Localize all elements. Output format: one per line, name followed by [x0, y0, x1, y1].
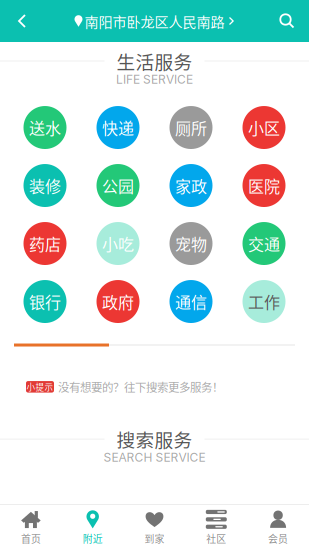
staticText: 医院	[248, 174, 280, 197]
staticText: 快递	[102, 116, 134, 139]
staticText: 厕所	[175, 116, 207, 139]
button[interactable]: 医院	[227, 156, 300, 214]
button[interactable]: 快递	[81, 98, 154, 156]
button[interactable]: Back	[0, 0, 44, 42]
staticText: 会员	[268, 531, 288, 546]
staticText: 搜索服务	[116, 426, 192, 453]
staticText: 公园	[102, 174, 134, 197]
button[interactable]: 银行	[8, 272, 81, 330]
button[interactable]: 会员	[247, 505, 309, 550]
button[interactable]: Search	[265, 0, 309, 42]
button[interactable]: 小区	[227, 98, 300, 156]
staticText: 装修	[29, 174, 61, 197]
button[interactable]: 首页	[0, 505, 62, 550]
button[interactable]: 药店	[8, 214, 81, 272]
button[interactable]: 工作	[227, 272, 300, 330]
button[interactable]: 南阳市卧龙区人民南路	[74, 11, 234, 31]
staticText: SEARCH SERVICE	[103, 450, 205, 465]
button[interactable]: 交通	[227, 214, 300, 272]
staticText: 到家	[144, 531, 164, 546]
staticText: 南阳市卧龙区人民南路	[84, 11, 224, 31]
button[interactable]: 到家	[124, 505, 185, 550]
staticText: 家政	[175, 174, 207, 197]
staticText: 送水	[29, 116, 61, 139]
staticText: 药店	[29, 232, 61, 255]
staticText: 宠物	[175, 232, 207, 255]
button[interactable]: 家政	[154, 156, 227, 214]
staticText: 没有想要的？往下搜索更多服务！	[58, 378, 223, 395]
staticText: 工作	[248, 290, 280, 313]
button[interactable]: 厕所	[154, 98, 227, 156]
button[interactable]: 送水	[8, 98, 81, 156]
staticText: 小区	[248, 116, 280, 139]
staticText: 政府	[102, 290, 134, 313]
staticText: 生活服务	[116, 47, 192, 74]
button[interactable]: 公园	[81, 156, 154, 214]
staticText: 社区	[206, 531, 226, 546]
staticText: 小吃	[102, 232, 134, 255]
button[interactable]: 社区	[185, 505, 247, 550]
staticText: 通信	[175, 290, 207, 313]
button[interactable]: 政府	[81, 272, 154, 330]
button[interactable]: 通信	[154, 272, 227, 330]
button[interactable]: 装修	[8, 156, 81, 214]
staticText: LIFE SERVICE	[116, 72, 193, 86]
staticText: 首页	[21, 531, 41, 546]
staticText: 交通	[248, 232, 280, 255]
staticText: 小提示	[26, 381, 53, 393]
button[interactable]: 小吃	[81, 214, 154, 272]
staticText: 附近	[83, 531, 103, 546]
button[interactable]: 附近	[62, 505, 124, 550]
button[interactable]: 宠物	[154, 214, 227, 272]
staticText: 银行	[29, 290, 61, 313]
